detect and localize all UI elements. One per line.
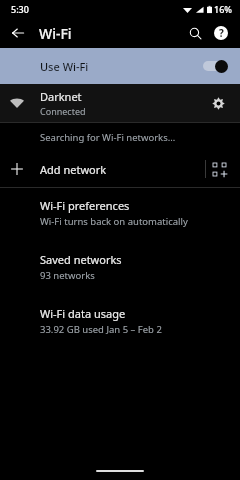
- staticText: 5:30: [11, 3, 29, 15]
- staticText: Saved networks: [40, 252, 122, 267]
- staticText: Darknet: [40, 89, 82, 104]
- staticText: Add network: [40, 162, 107, 177]
- staticText: Wi-Fi preferences: [40, 198, 130, 213]
- staticText: Wi-Fi data usage: [40, 306, 126, 321]
- button[interactable]: Scan QR code: [206, 156, 232, 182]
- staticText: Use Wi-Fi: [40, 59, 89, 74]
- staticText: Wi-Fi turns back on automatically: [40, 215, 188, 228]
- button[interactable]: Add network: [0, 151, 240, 187]
- button[interactable]: Use Wi-Fi: [0, 48, 240, 84]
- staticText: 33.92 GB used Jan 5 – Feb 2: [40, 323, 162, 336]
- button[interactable]: Darknet: [0, 84, 240, 122]
- button[interactable]: Saved networks: [0, 234, 240, 288]
- staticText: ?: [219, 26, 224, 40]
- staticText: 16%: [214, 3, 232, 15]
- staticText: Connected: [40, 105, 86, 117]
- button[interactable]: Wi-Fi data usage: [0, 288, 240, 342]
- staticText: Searching for Wi-Fi networks…: [40, 131, 176, 144]
- button[interactable]: Search: [182, 20, 208, 46]
- staticText: 93 networks: [40, 269, 95, 282]
- button[interactable]: Help: [208, 20, 234, 46]
- button[interactable]: Wi-Fi preferences: [0, 188, 240, 234]
- button[interactable]: Network settings: [206, 91, 230, 115]
- button[interactable]: Back: [5, 20, 31, 46]
- staticText: Wi-Fi: [39, 24, 72, 43]
